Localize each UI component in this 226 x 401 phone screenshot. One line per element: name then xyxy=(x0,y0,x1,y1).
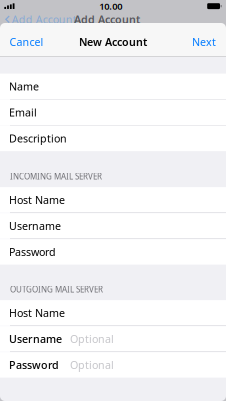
staticText: Cancel xyxy=(9,35,43,49)
button[interactable]: Password xyxy=(0,239,226,265)
button[interactable]: Host Name xyxy=(0,300,226,326)
button[interactable]: Name xyxy=(0,74,226,99)
button[interactable]: Host Name xyxy=(0,187,226,213)
button[interactable]: Description xyxy=(0,126,226,151)
staticText: Description xyxy=(9,131,67,145)
staticText: Username xyxy=(9,332,62,346)
staticText: Add Account xyxy=(74,12,140,26)
button[interactable]: Username xyxy=(0,213,226,239)
staticText: INCOMING MAIL SERVER xyxy=(10,171,102,182)
staticText: 10.00 xyxy=(99,0,122,12)
button[interactable]: Email xyxy=(0,100,226,125)
staticText: Add Account xyxy=(12,12,77,26)
staticText: Username xyxy=(9,219,61,233)
staticText: Email xyxy=(9,105,37,119)
button[interactable]: Next xyxy=(182,27,226,57)
staticText: Password xyxy=(9,245,56,259)
staticText: Optional xyxy=(70,358,114,372)
button[interactable]: Username xyxy=(0,326,226,352)
staticText: New Account xyxy=(79,35,147,49)
button[interactable]: Cancel xyxy=(0,27,53,57)
staticText: Host Name xyxy=(9,193,65,207)
button[interactable]: Password xyxy=(0,352,226,378)
staticText: Name xyxy=(9,79,39,93)
staticText: Optional xyxy=(70,332,114,346)
staticText: Next xyxy=(192,35,216,49)
staticText: Host Name xyxy=(9,306,65,320)
staticText: Password xyxy=(9,358,59,372)
staticText: OUTGOING MAIL SERVER xyxy=(10,284,103,295)
